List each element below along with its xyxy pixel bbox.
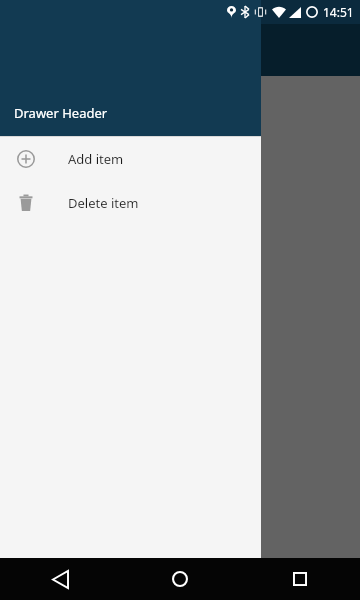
staticText: Add item	[68, 150, 124, 168]
staticText: 14:51	[323, 4, 354, 20]
other: Delete item	[17, 194, 35, 212]
button[interactable]: Recent apps	[240, 558, 360, 600]
button[interactable]: Add item	[0, 137, 261, 181]
button[interactable]: Delete item	[0, 181, 261, 225]
button[interactable]: Home	[120, 558, 240, 600]
staticText: Drawer Header	[14, 104, 108, 122]
staticText: Delete item	[68, 194, 139, 212]
button[interactable]: Back	[0, 558, 120, 600]
other: Add item	[17, 150, 35, 168]
